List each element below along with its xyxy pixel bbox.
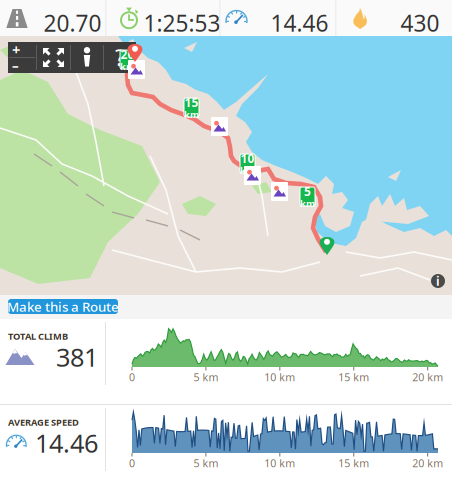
staticText: 1:25:53 <box>143 8 220 38</box>
staticText: 10 km <box>264 456 295 470</box>
staticText: 20 km <box>412 370 443 384</box>
staticText: 15 km <box>338 456 369 470</box>
button[interactable]: Help <box>104 42 136 73</box>
staticText: 14.46 <box>270 8 328 38</box>
staticText: TOTAL CLIMB <box>8 330 68 342</box>
staticText: 15 km <box>338 370 369 384</box>
staticText: 0 <box>129 370 135 384</box>
staticText: 10 <box>240 150 254 166</box>
staticText: i <box>436 273 440 289</box>
button[interactable]: Street view <box>71 42 103 73</box>
staticText: 430 <box>400 8 439 38</box>
button[interactable]: Make this a Route <box>8 299 118 314</box>
button[interactable]: Zoom in <box>8 42 36 57</box>
staticText: 5 km <box>193 370 218 384</box>
button[interactable]: 14.46 <box>220 0 335 36</box>
button[interactable]: 430 <box>336 0 452 36</box>
staticText: 381 <box>56 340 98 374</box>
staticText: km <box>184 108 199 121</box>
staticText: km <box>240 164 255 177</box>
staticText: km <box>120 60 135 73</box>
staticText: 20 km <box>412 456 443 470</box>
staticText: AVERAGE SPEED <box>8 416 79 428</box>
button[interactable]: 20.70 <box>0 0 105 36</box>
staticText: – <box>12 57 19 74</box>
staticText: 0 <box>129 456 135 470</box>
staticText: + <box>12 40 20 59</box>
button[interactable]: Zoom out <box>8 58 36 73</box>
staticText: 20 <box>120 46 134 62</box>
staticText: km <box>300 197 315 210</box>
staticText: Make this a Route <box>7 298 119 315</box>
button[interactable]: Full screen <box>37 42 70 73</box>
button[interactable]: 1:25:53 <box>106 0 219 36</box>
staticText: 5 <box>304 183 311 199</box>
button[interactable]: Map information <box>431 274 445 288</box>
staticText: 14.46 <box>35 426 98 460</box>
staticText: 10 km <box>264 370 295 384</box>
button[interactable]: TOTAL CLIMB <box>0 319 452 404</box>
staticText: 20.70 <box>43 8 101 38</box>
button[interactable]: AVERAGE SPEED <box>0 405 452 478</box>
staticText: 5 km <box>193 456 218 470</box>
staticText: ? <box>115 42 125 72</box>
staticText: 15 <box>184 94 198 110</box>
